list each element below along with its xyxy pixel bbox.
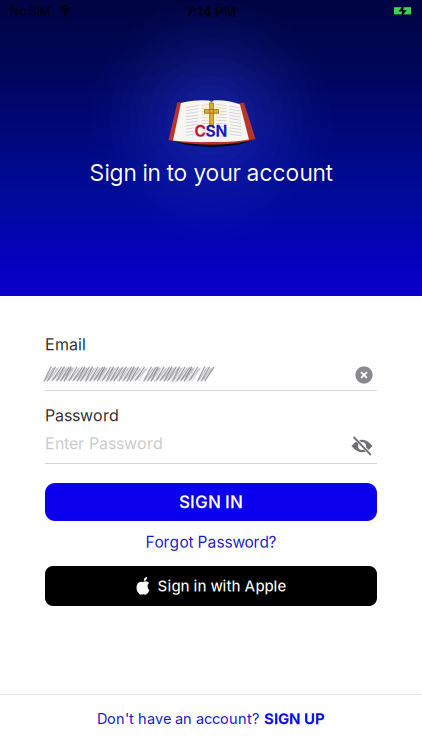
staticText: Enter Password xyxy=(45,434,163,453)
staticText: Email xyxy=(45,335,86,354)
staticText: C xyxy=(194,122,205,140)
button[interactable]: Sign in with Apple xyxy=(45,566,377,606)
staticText: Don't have an account? xyxy=(97,710,259,727)
button[interactable]: Clear email xyxy=(355,366,373,384)
staticText: 7:14 PM xyxy=(186,4,236,20)
staticText: Sign in with Apple xyxy=(157,577,286,595)
button[interactable]: SIGN IN xyxy=(45,483,377,521)
staticText: SN xyxy=(205,122,227,140)
staticText: Forgot Password? xyxy=(145,533,276,551)
button[interactable]: Don't have an account? xyxy=(97,710,325,728)
staticText: No SIM xyxy=(10,4,51,18)
button[interactable]: Show password xyxy=(351,437,373,455)
button[interactable]: Forgot Password? xyxy=(145,533,276,551)
staticText: Password xyxy=(45,406,119,425)
staticText: Sign in to your account xyxy=(89,159,332,186)
staticText: SIGN IN xyxy=(179,492,243,512)
staticText: SIGN UP xyxy=(264,710,325,728)
